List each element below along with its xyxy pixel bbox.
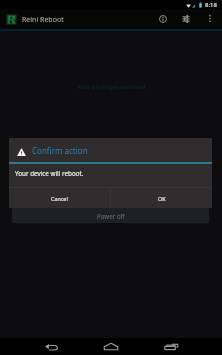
staticText: Cancel: [51, 195, 68, 202]
button[interactable]: Info: [153, 9, 173, 29]
staticText: Reini Reboot: [22, 15, 64, 25]
staticText: Your device will reboot.: [15, 169, 84, 178]
staticText: OK: [158, 195, 166, 202]
button[interactable]: Home: [103, 341, 119, 351]
staticText: Root privileges acquired: [77, 83, 146, 91]
button[interactable]: OK: [111, 188, 212, 208]
button[interactable]: Recents: [162, 341, 179, 351]
button[interactable]: Back: [43, 342, 59, 352]
button[interactable]: Power off: [12, 208, 209, 223]
staticText: 8:18: [205, 1, 217, 9]
button[interactable]: Settings: [176, 9, 196, 29]
staticText: Confirm action: [32, 145, 88, 156]
staticText: Power off: [97, 212, 125, 220]
button[interactable]: Cancel: [9, 188, 110, 208]
button[interactable]: More options: [201, 9, 219, 27]
